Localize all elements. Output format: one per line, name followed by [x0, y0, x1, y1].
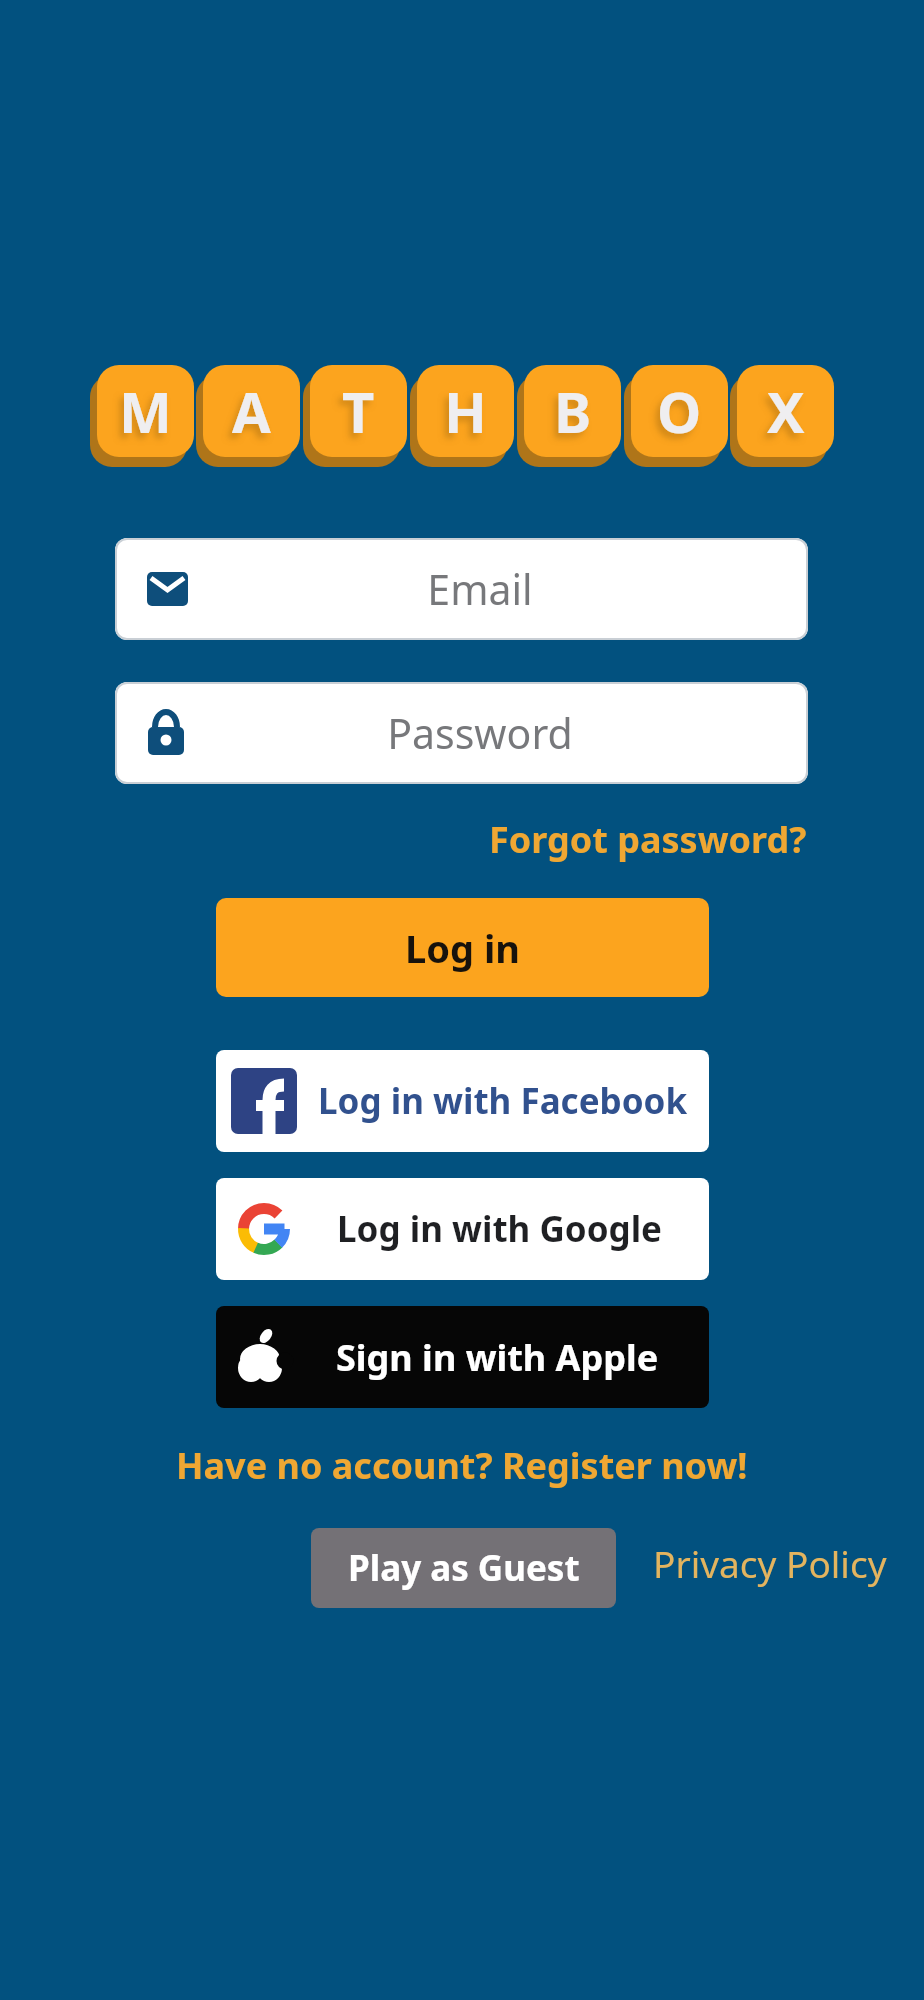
staticText: Privacy Policy [653, 1538, 887, 1588]
staticText: Email [427, 561, 533, 617]
button[interactable]: Forgot password? [0, 807, 807, 871]
staticText: M [119, 373, 172, 449]
staticText: Play as Guest [348, 1544, 580, 1592]
button[interactable]: Email [115, 538, 808, 640]
button[interactable]: Privacy Policy [640, 1531, 900, 1595]
button[interactable]: Log in with Facebook [216, 1050, 709, 1152]
staticText: B [554, 373, 592, 449]
staticText: T [342, 373, 375, 449]
button[interactable]: Password [115, 682, 808, 784]
staticText: Log in with Google [337, 1205, 662, 1253]
button[interactable]: Have no account? Register now! [0, 1433, 924, 1497]
staticText: Password [387, 705, 573, 761]
staticText: Have no account? Register now! [176, 1441, 748, 1490]
staticText: Forgot password? [489, 815, 807, 864]
staticText: Log in with Facebook [318, 1077, 688, 1125]
button[interactable]: Sign in with Apple [216, 1306, 709, 1408]
staticText: O [657, 373, 702, 449]
staticText: Sign in with Apple [336, 1333, 659, 1382]
button[interactable]: Log in with Google [216, 1178, 709, 1280]
staticText: A [232, 373, 271, 449]
staticText: Log in [405, 922, 520, 974]
button[interactable]: Log in [216, 898, 709, 997]
button[interactable]: Play as Guest [311, 1528, 616, 1608]
staticText: X [767, 373, 805, 449]
staticText: H [444, 373, 487, 449]
